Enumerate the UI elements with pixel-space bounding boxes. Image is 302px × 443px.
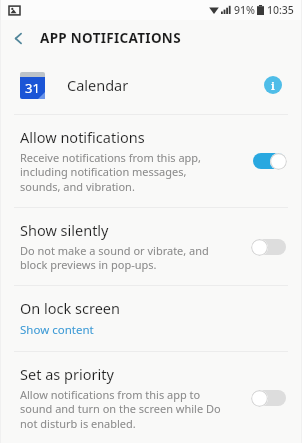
- staticText: Calendar: [67, 75, 129, 95]
- staticText: On lock screen: [20, 298, 120, 318]
- staticText: Show silently: [20, 220, 109, 240]
- button[interactable]: 31: [0, 56, 302, 114]
- button[interactable]: Show silently: [250, 236, 288, 258]
- button[interactable]: Set as priority: [0, 352, 302, 443]
- button[interactable]: Allow notifications: [0, 115, 302, 207]
- staticText: Do not make a sound or vibrate, and bloc…: [20, 243, 209, 273]
- button[interactable]: Allow notifications: [250, 150, 288, 172]
- button[interactable]: Set as priority: [250, 387, 288, 409]
- staticText: APP NOTIFICATIONS: [40, 29, 181, 47]
- staticText: Show content: [20, 322, 94, 338]
- staticText: 10:35: [267, 3, 294, 17]
- staticText: Receive notifications from this app, inc…: [20, 150, 202, 195]
- button[interactable]: On lock screen: [0, 286, 302, 351]
- staticText: 91%: [234, 3, 255, 17]
- button[interactable]: App info: [260, 72, 286, 98]
- button[interactable]: Show silently: [0, 208, 302, 285]
- staticText: i: [271, 78, 275, 93]
- staticText: Allow notifications: [20, 127, 145, 147]
- staticText: Allow notifications from this app to sou…: [20, 387, 221, 431]
- staticText: Set as priority: [20, 364, 114, 384]
- button[interactable]: Back: [0, 20, 36, 56]
- staticText: 31: [25, 79, 40, 97]
